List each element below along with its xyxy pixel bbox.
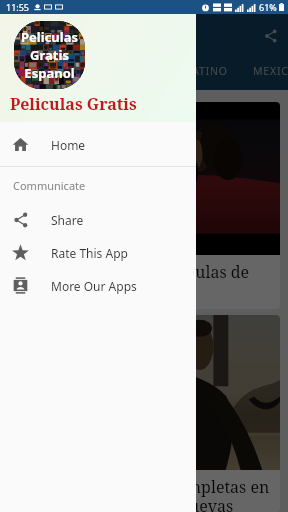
staticText: 61% [259, 1, 277, 13]
staticText: Communicate [13, 178, 86, 193]
staticText: Share [51, 212, 84, 228]
staticText: Home [51, 137, 86, 153]
button[interactable]: Rate This App [0, 236, 196, 269]
button[interactable]: Ver peliculas gratis completas en españo… [8, 315, 280, 512]
staticText: LATINO [186, 64, 228, 78]
button[interactable]: Share [258, 23, 284, 49]
staticText: Peliculas [21, 28, 78, 46]
button[interactable]: Share [0, 203, 196, 236]
staticText: Rate This App [51, 245, 128, 261]
staticText: Peliculas Gratis [10, 93, 137, 115]
button[interactable]: Home [0, 128, 196, 161]
staticText: Espanol [24, 64, 75, 82]
staticText: Gratis [30, 46, 69, 64]
staticText: More Our Apps [51, 278, 137, 294]
button[interactable]: Nuevas y mejores peliculas de [8, 102, 280, 309]
staticText: 11:55 [6, 1, 30, 13]
button[interactable]: More Our Apps [0, 269, 196, 302]
staticText: Ver peliculas gratis completas en españo… [20, 476, 270, 512]
staticText: MEXICANO [253, 64, 288, 78]
button[interactable]: MEXICANO [240, 64, 288, 78]
button[interactable]: LATINO [174, 64, 240, 78]
staticText: Nuevas y mejores peliculas de [20, 261, 250, 283]
